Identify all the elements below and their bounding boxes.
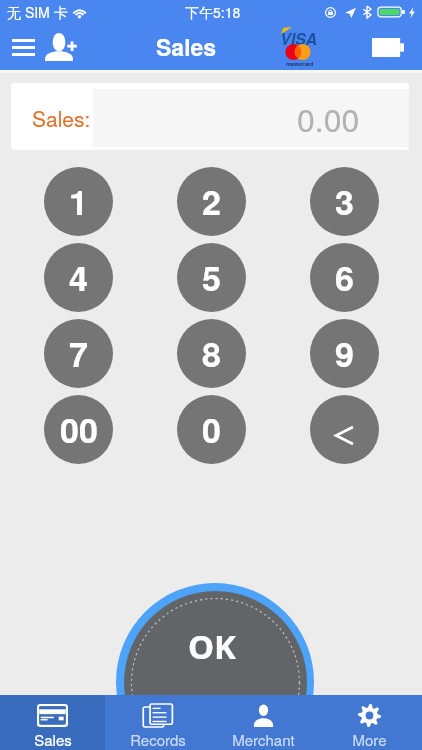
staticText: Sales bbox=[34, 729, 72, 750]
staticText: mastercard bbox=[286, 60, 313, 67]
staticText: 9 bbox=[335, 329, 354, 378]
staticText: 下午5:18 bbox=[185, 2, 241, 22]
button[interactable]: Device battery bbox=[364, 24, 414, 70]
staticText: 7 bbox=[69, 329, 88, 378]
staticText: 3 bbox=[335, 177, 354, 226]
button[interactable]: Accepted cards bbox=[272, 24, 322, 70]
button[interactable]: 3 bbox=[310, 167, 379, 236]
button[interactable]: 6 bbox=[310, 243, 379, 312]
staticText: 无 SIM 卡 bbox=[7, 2, 68, 22]
button[interactable]: Add user bbox=[41, 24, 81, 70]
button[interactable]: 1 bbox=[44, 167, 113, 236]
button[interactable]: 5 bbox=[177, 243, 246, 312]
staticText: 6 bbox=[335, 253, 354, 302]
button[interactable]: 0 bbox=[177, 395, 246, 464]
staticText: 5 bbox=[202, 253, 221, 302]
button[interactable]: More bbox=[316, 695, 422, 750]
button[interactable]: Backspace bbox=[310, 395, 379, 464]
button[interactable]: Menu bbox=[4, 24, 42, 70]
button[interactable]: Sales bbox=[0, 695, 105, 750]
button[interactable]: 2 bbox=[177, 167, 246, 236]
button[interactable]: 00 bbox=[44, 395, 113, 464]
button[interactable]: 9 bbox=[310, 319, 379, 388]
staticText: VISA bbox=[280, 27, 317, 50]
staticText: More bbox=[352, 729, 387, 750]
staticText: 8 bbox=[202, 329, 221, 378]
staticText: 1 bbox=[69, 177, 88, 226]
staticText: 00 bbox=[60, 405, 98, 454]
button[interactable]: Sales: bbox=[11, 83, 409, 150]
staticText: Sales: bbox=[32, 103, 91, 133]
staticText: 2 bbox=[202, 177, 221, 226]
staticText: OK bbox=[188, 624, 237, 669]
staticText: 0 bbox=[202, 405, 221, 454]
button[interactable]: 8 bbox=[177, 319, 246, 388]
button[interactable]: OK bbox=[116, 583, 314, 750]
staticText: 4 bbox=[69, 253, 88, 302]
button[interactable]: Merchant bbox=[210, 695, 316, 750]
staticText: 0.00 bbox=[297, 95, 360, 141]
staticText: Sales bbox=[156, 30, 217, 63]
button[interactable]: 7 bbox=[44, 319, 113, 388]
staticText: Merchant bbox=[232, 729, 295, 750]
button[interactable]: Records bbox=[105, 695, 210, 750]
staticText: Records bbox=[130, 729, 186, 750]
button[interactable]: 4 bbox=[44, 243, 113, 312]
